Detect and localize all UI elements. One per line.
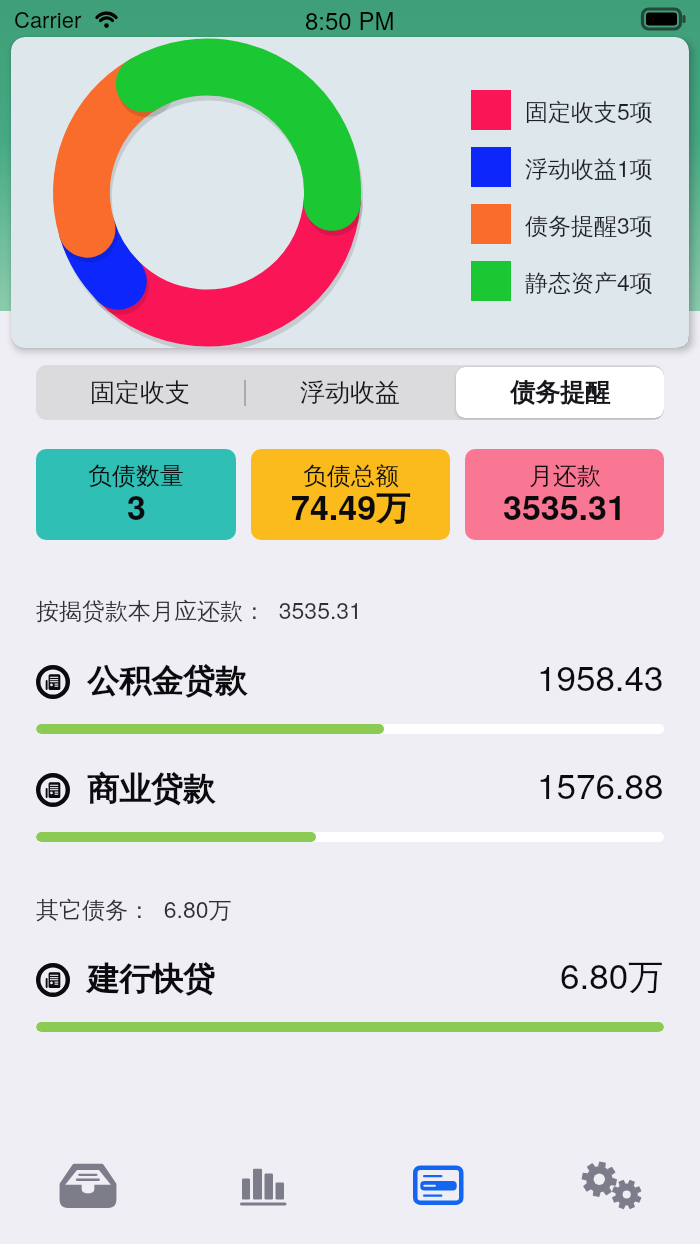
- button[interactable]: 建行快贷: [0, 958, 700, 1032]
- staticText: 浮动收益1项: [525, 151, 653, 184]
- button[interactable]: Statistics: [175, 1130, 350, 1244]
- staticText: 6.80万: [560, 949, 664, 993]
- button[interactable]: 浮动收益: [246, 367, 454, 418]
- staticText: 固定收支: [90, 377, 190, 408]
- button[interactable]: Accounts: [350, 1130, 525, 1244]
- button[interactable]: 固定收支: [36, 367, 244, 418]
- staticText: 建行快贷: [87, 959, 215, 999]
- staticText: 8:50 PM: [305, 2, 395, 36]
- staticText: 债务提醒: [510, 377, 610, 408]
- button[interactable]: 负债数量: [36, 449, 236, 540]
- staticText: 商业贷款: [87, 769, 215, 809]
- staticText: 静态资产4项: [525, 265, 653, 298]
- staticText: 浮动收益: [300, 377, 400, 408]
- staticText: 3: [127, 482, 146, 531]
- button[interactable]: 公积金贷款: [0, 660, 700, 734]
- staticText: 其它债务： 6.80万: [36, 892, 232, 925]
- button[interactable]: 月还款: [465, 449, 664, 540]
- staticText: Carrier: [14, 3, 82, 35]
- staticText: 1958.43: [537, 651, 664, 695]
- staticText: 债务提醒3项: [525, 208, 653, 241]
- staticText: 月还款: [529, 461, 601, 491]
- button[interactable]: Settings: [525, 1130, 700, 1244]
- staticText: 1576.88: [537, 759, 664, 803]
- button[interactable]: 商业贷款: [0, 768, 700, 842]
- staticText: 公积金贷款: [87, 661, 247, 701]
- staticText: 按揭贷款本月应还款： 3535.31: [36, 593, 362, 626]
- staticText: 负债数量: [88, 461, 184, 491]
- staticText: 固定收支5项: [525, 94, 653, 127]
- staticText: 74.49万: [291, 482, 411, 531]
- button[interactable]: 负债总额: [251, 449, 450, 540]
- staticText: 3535.31: [503, 482, 626, 531]
- staticText: 负债总额: [303, 461, 399, 491]
- button[interactable]: Inbox: [0, 1130, 175, 1244]
- button[interactable]: 债务提醒: [456, 367, 664, 418]
